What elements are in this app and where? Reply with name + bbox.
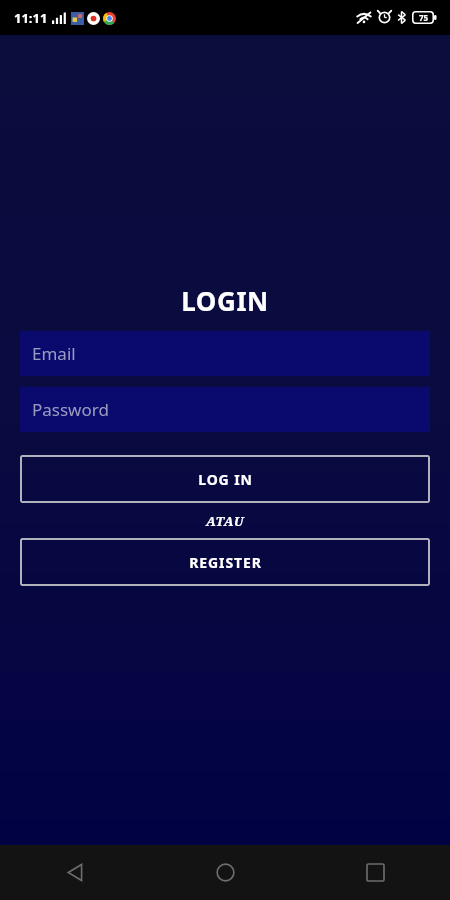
- button[interactable]: Log in: [20, 455, 430, 503]
- staticText: ATAU: [206, 512, 244, 530]
- button[interactable]: Email: [20, 331, 430, 376]
- staticText: 11:11: [14, 9, 48, 27]
- staticText: LOG IN: [198, 470, 253, 489]
- button[interactable]: Recent apps: [300, 845, 450, 900]
- button[interactable]: Back: [0, 845, 150, 900]
- staticText: Password: [32, 398, 109, 421]
- button[interactable]: Home: [150, 845, 300, 900]
- staticText: LOGIN: [181, 283, 269, 318]
- staticText: REGISTER: [189, 553, 262, 572]
- staticText: 75: [419, 12, 429, 23]
- staticText: Email: [32, 342, 76, 365]
- button[interactable]: Password: [20, 387, 430, 432]
- button[interactable]: Register: [20, 538, 430, 586]
